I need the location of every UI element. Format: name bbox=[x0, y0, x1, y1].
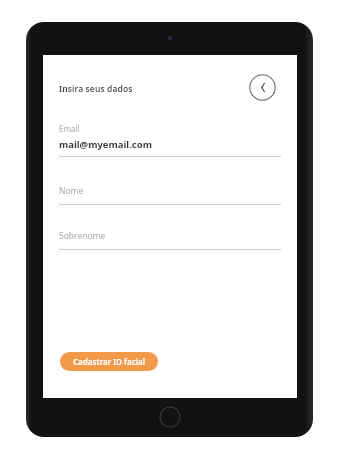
staticText: Insira seus dados bbox=[59, 83, 133, 95]
button[interactable]: Sobrenome bbox=[59, 230, 281, 250]
button[interactable]: Nome bbox=[59, 185, 281, 205]
staticText: Nome bbox=[59, 185, 84, 197]
staticText: Sobrenome bbox=[59, 230, 106, 242]
button[interactable]: Email bbox=[59, 123, 281, 157]
button[interactable]: Insira seus dados bbox=[59, 81, 133, 97]
staticText: Cadastrar ID facial bbox=[73, 356, 145, 367]
staticText: mail@myemail.com bbox=[59, 138, 152, 151]
button[interactable]: Voltar bbox=[249, 74, 276, 101]
staticText: Email bbox=[59, 123, 80, 134]
button[interactable]: Cadastrar ID facial bbox=[60, 352, 158, 371]
